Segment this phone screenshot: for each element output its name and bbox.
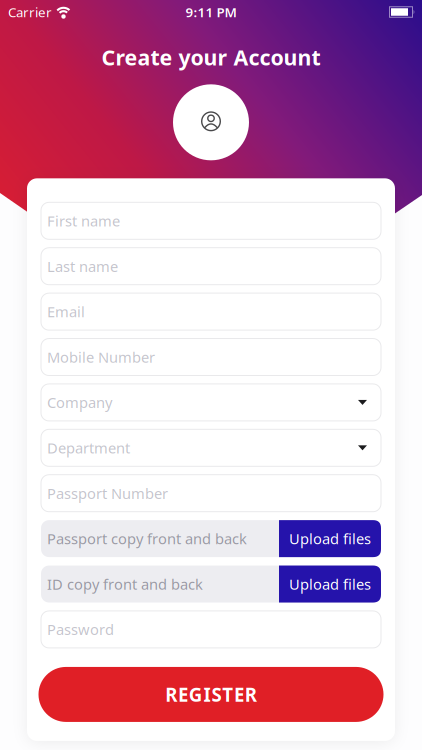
staticText: REGISTER (165, 682, 257, 707)
staticText: Passport Number (47, 483, 168, 503)
staticText: Password (47, 620, 114, 639)
staticText: Mobile Number (47, 347, 155, 367)
button[interactable]: REGISTER (38, 667, 383, 722)
textField[interactable]: Last name (41, 248, 381, 285)
textField[interactable]: Mobile Number (41, 338, 381, 375)
staticText: Upload files (289, 529, 371, 548)
button[interactable]: Company (41, 384, 381, 421)
staticText: Company (47, 393, 112, 412)
button[interactable]: Department (41, 429, 381, 466)
staticText: First name (47, 211, 120, 231)
button[interactable]: Upload files (279, 565, 381, 602)
staticText: ID copy front and back (47, 574, 203, 594)
staticText: Create your Account (101, 43, 320, 71)
textField[interactable]: First name (41, 202, 381, 239)
staticText: 9:11 PM (185, 3, 236, 21)
secureTextField[interactable]: Password (41, 611, 381, 648)
staticText: Carrier (8, 3, 52, 21)
staticText: Upload files (289, 574, 371, 594)
button[interactable]: Upload files (279, 520, 381, 557)
staticText: Department (47, 438, 130, 458)
staticText: Email (47, 302, 85, 321)
textField[interactable]: Email (41, 293, 381, 330)
staticText: Passport copy front and back (47, 529, 247, 548)
staticText: Last name (47, 256, 118, 276)
textField[interactable]: Passport Number (41, 475, 381, 512)
